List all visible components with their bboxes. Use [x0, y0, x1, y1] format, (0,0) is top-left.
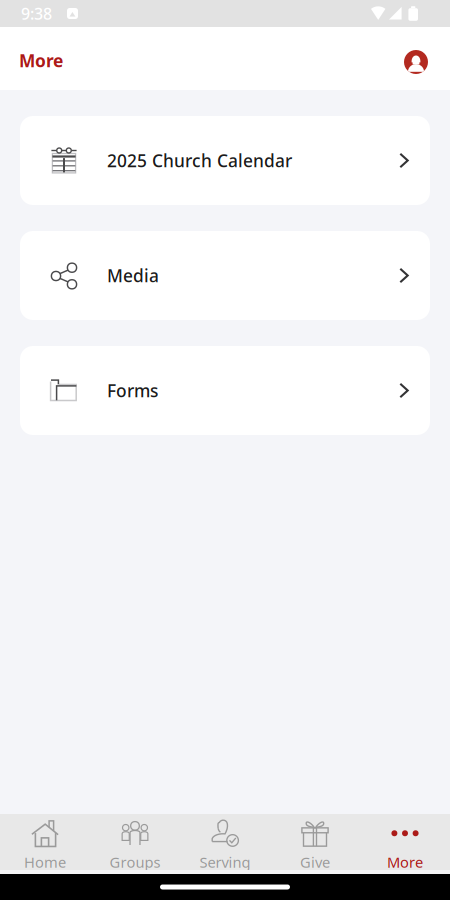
button[interactable]: Give	[270, 814, 360, 870]
staticText: Give	[300, 852, 330, 872]
staticText: More	[19, 49, 63, 72]
staticText: Media	[107, 264, 159, 287]
staticText: Groups	[109, 852, 160, 872]
button[interactable]: Serving	[180, 814, 270, 870]
staticText: Serving	[199, 852, 250, 872]
button[interactable]: Media	[20, 231, 430, 320]
button[interactable]: Home	[0, 814, 90, 870]
button[interactable]: Forms	[20, 346, 430, 435]
staticText: Forms	[107, 379, 158, 402]
button[interactable]: More	[0, 35, 75, 82]
staticText: Home	[24, 852, 66, 872]
button[interactable]: 2025 Church Calendar	[20, 116, 430, 205]
staticText: More	[387, 852, 423, 872]
button[interactable]: Account	[390, 39, 450, 78]
staticText: 2025 Church Calendar	[107, 149, 292, 172]
button[interactable]: More	[360, 814, 450, 870]
button[interactable]: Groups	[90, 814, 180, 870]
staticText: 9:38	[21, 3, 52, 24]
